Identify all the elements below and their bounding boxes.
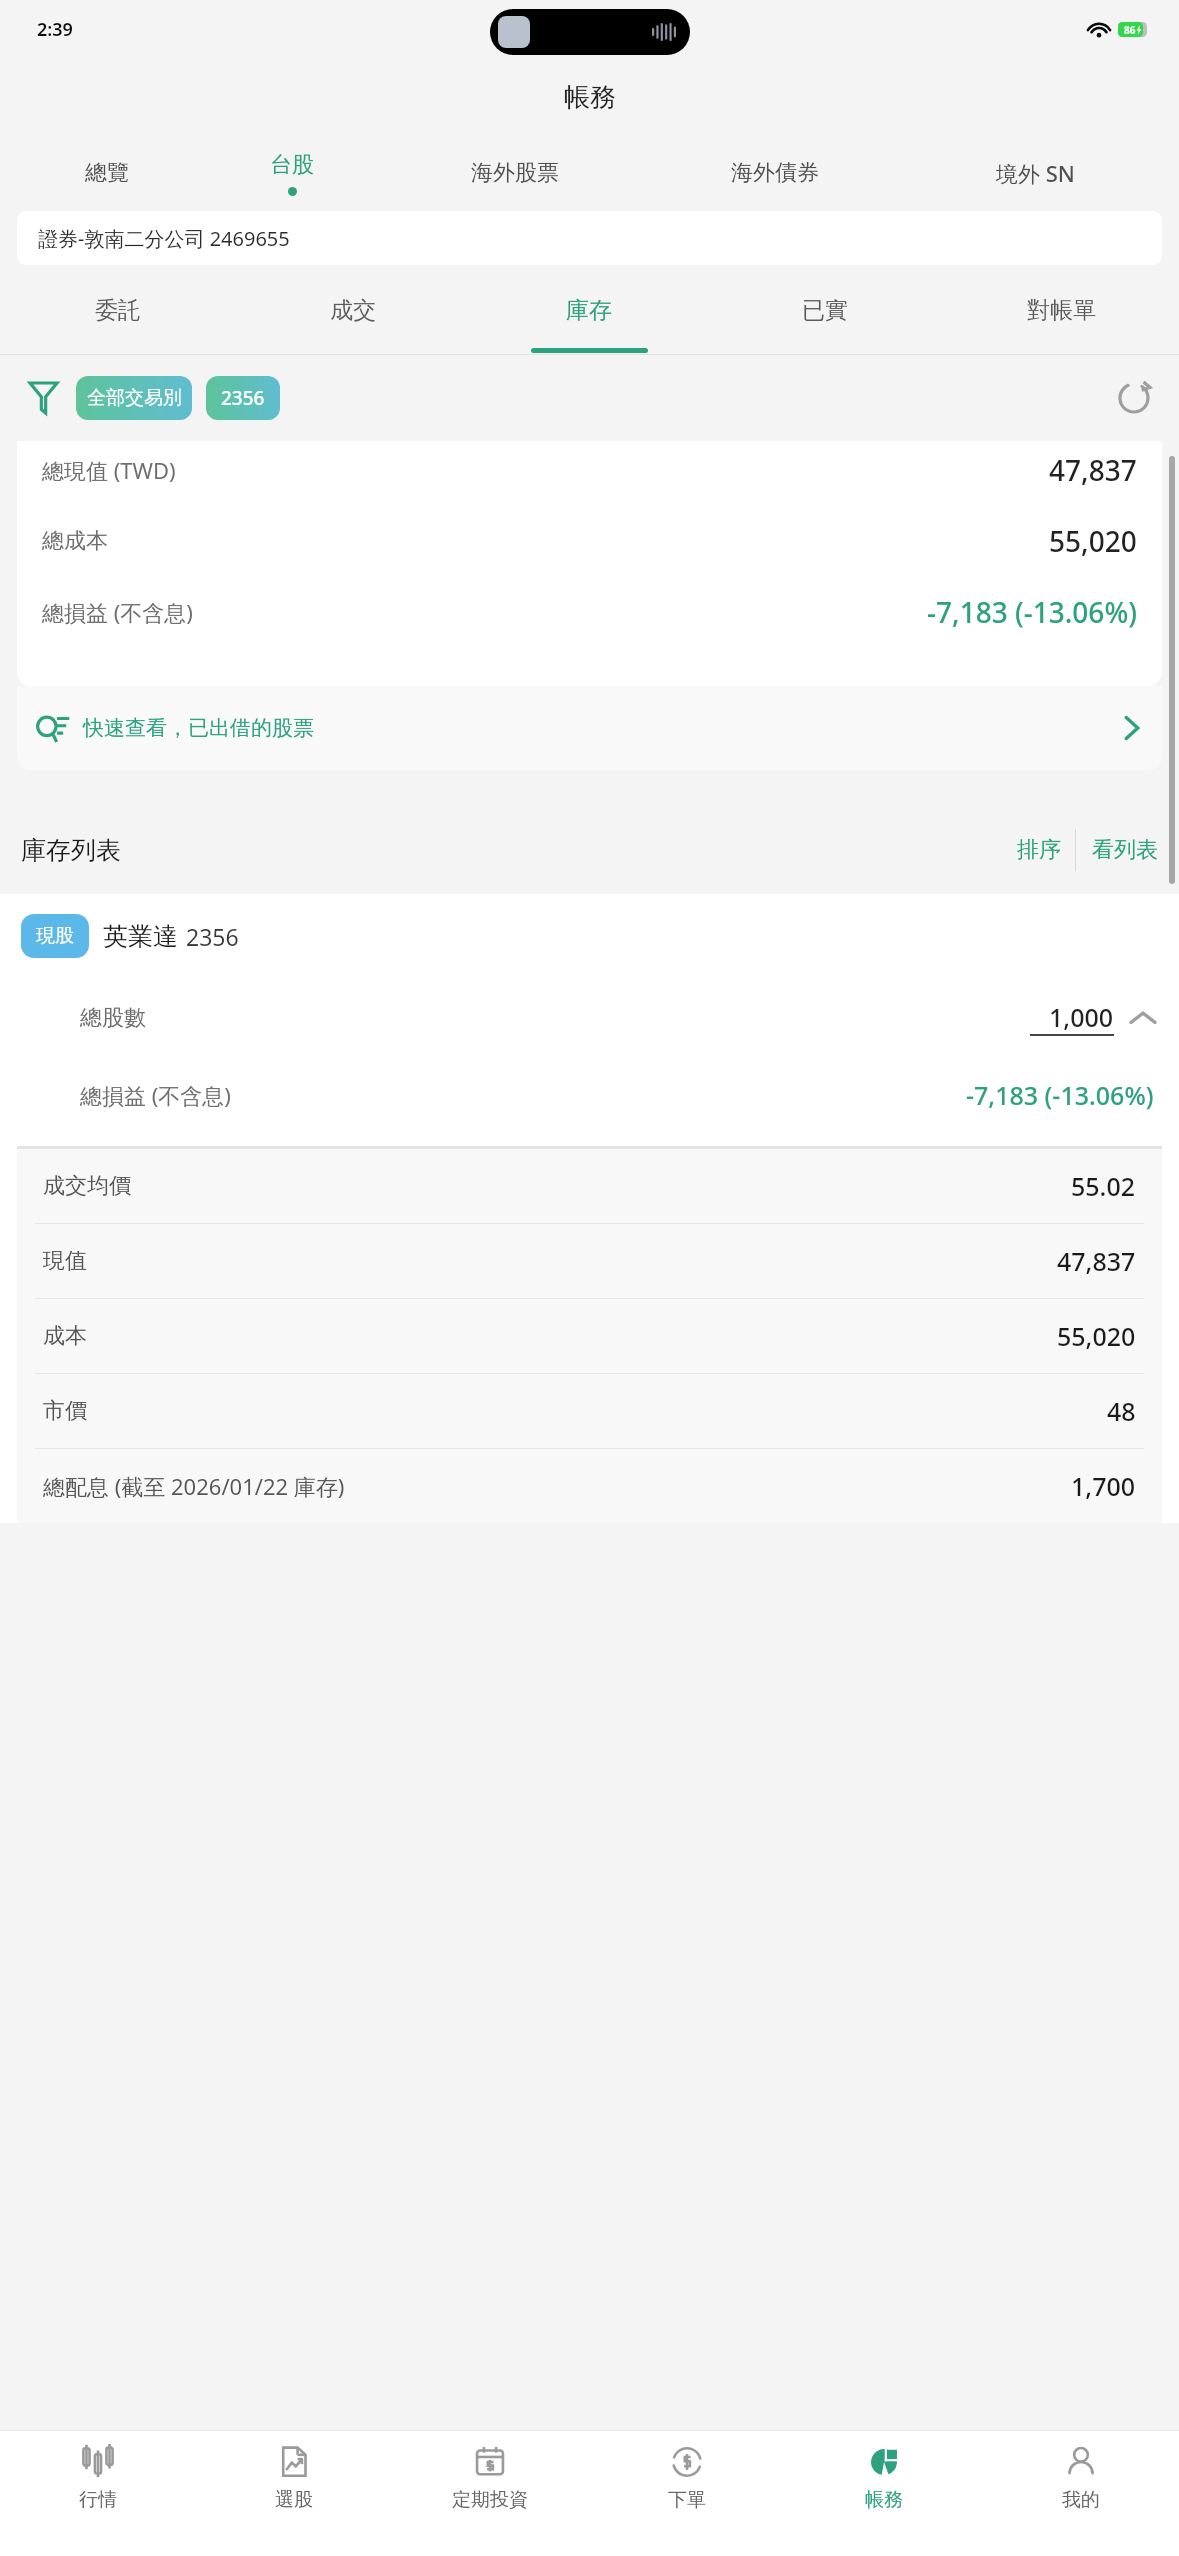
- button[interactable]: 台股: [199, 135, 385, 211]
- staticText: 1,000: [1049, 1000, 1114, 1034]
- staticText: -7,183 (-13.06%): [927, 593, 1137, 631]
- button[interactable]: Refresh: [1110, 374, 1158, 422]
- staticText: 55,020: [1049, 522, 1137, 560]
- staticText: 證券-敦南二分公司 2469655: [38, 225, 290, 252]
- button[interactable]: 看列表: [1076, 828, 1158, 872]
- staticText: 55,020: [1057, 1319, 1136, 1353]
- button[interactable]: 現股: [21, 894, 1179, 978]
- button[interactable]: 帳務: [785, 2431, 982, 2556]
- button[interactable]: 我的: [982, 2431, 1179, 2556]
- staticText: 總損益 (不含息): [42, 597, 193, 627]
- button[interactable]: 庫存: [471, 265, 707, 355]
- button[interactable]: 行情: [0, 2431, 196, 2556]
- button[interactable]: 全部交易別: [76, 376, 192, 420]
- staticText: 選股: [275, 2488, 313, 2512]
- button[interactable]: 委託: [0, 265, 235, 355]
- staticText: 市價: [43, 1397, 87, 1425]
- button[interactable]: 海外股票: [385, 135, 645, 211]
- button[interactable]: 2356: [206, 376, 280, 420]
- button[interactable]: 快速查看，已出借的股票: [17, 686, 1162, 770]
- button[interactable]: 海外債券: [645, 135, 905, 211]
- button[interactable]: 總覽: [14, 135, 199, 211]
- button[interactable]: 證券-敦南二分公司 2469655: [17, 211, 1162, 265]
- button[interactable]: 下單: [588, 2431, 785, 2556]
- staticText: 對帳單: [1027, 296, 1096, 325]
- button[interactable]: 境外 SN: [905, 135, 1165, 211]
- staticText: 2:39: [37, 17, 73, 42]
- staticText: 已實: [802, 296, 848, 325]
- staticText: 海外股票: [471, 159, 559, 187]
- staticText: 海外債券: [731, 159, 819, 187]
- staticText: 全部交易別: [87, 386, 182, 410]
- button[interactable]: Filter: [21, 376, 65, 420]
- button[interactable]: 選股: [196, 2431, 392, 2556]
- button[interactable]: 已實: [707, 265, 943, 355]
- staticText: 48: [1107, 1394, 1136, 1428]
- staticText: 2356: [221, 385, 265, 411]
- staticText: 2356: [186, 921, 239, 952]
- staticText: 委託: [95, 296, 141, 325]
- staticText: 成交均價: [43, 1172, 131, 1200]
- staticText: 47,837: [1049, 451, 1137, 489]
- staticText: 總損益 (不含息): [80, 1080, 231, 1110]
- staticText: 總股數: [80, 1004, 146, 1032]
- staticText: 總配息 (截至 2026/01/22 庫存): [43, 1471, 345, 1501]
- staticText: 成交: [330, 296, 376, 325]
- staticText: 1,700: [1071, 1469, 1136, 1503]
- staticText: 帳務: [865, 2488, 903, 2512]
- staticText: 排序: [1017, 836, 1061, 864]
- staticText: 台股: [270, 151, 314, 179]
- staticText: 55.02: [1071, 1169, 1136, 1203]
- staticText: 下單: [668, 2488, 706, 2512]
- staticText: 看列表: [1092, 836, 1158, 864]
- staticText: 快速查看，已出借的股票: [83, 715, 314, 741]
- staticText: 庫存列表: [21, 835, 121, 866]
- button[interactable]: 定期投資: [392, 2431, 588, 2556]
- staticText: 成本: [43, 1322, 87, 1350]
- staticText: 行情: [79, 2488, 117, 2512]
- other: Collapse: [1128, 1008, 1158, 1028]
- button[interactable]: 成交: [235, 265, 471, 355]
- staticText: 總覽: [85, 159, 129, 187]
- staticText: -7,183 (-13.06%): [966, 1078, 1154, 1112]
- staticText: 境外 SN: [996, 158, 1075, 188]
- staticText: 現值: [43, 1247, 87, 1275]
- staticText: 庫存: [566, 296, 612, 325]
- staticText: 47,837: [1057, 1244, 1136, 1278]
- button[interactable]: 排序: [1003, 828, 1075, 872]
- staticText: 總現值 (TWD): [42, 455, 176, 485]
- staticText: 定期投資: [452, 2488, 528, 2512]
- staticText: 我的: [1062, 2488, 1100, 2512]
- staticText: 現股: [36, 924, 74, 948]
- staticText: 86: [1124, 23, 1136, 37]
- staticText: 帳務: [564, 81, 616, 114]
- button[interactable]: 對帳單: [943, 265, 1179, 355]
- staticText: 總成本: [42, 527, 108, 555]
- staticText: 英業達: [103, 921, 178, 952]
